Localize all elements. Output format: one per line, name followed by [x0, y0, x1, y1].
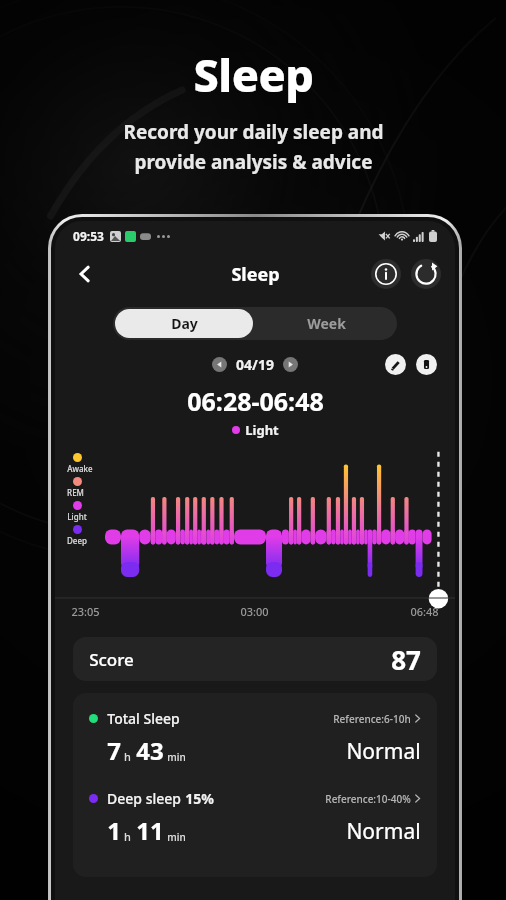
staticText: 11	[136, 814, 164, 847]
staticText: Normal	[346, 817, 421, 846]
staticText: 04/19	[236, 355, 274, 374]
staticText: Awake	[67, 463, 93, 474]
staticText: 06:28-06:48	[187, 384, 324, 418]
staticText: Total Sleep	[107, 709, 180, 728]
staticText: Record your daily sleep and	[123, 119, 384, 145]
button[interactable]: Next day	[283, 357, 298, 372]
button[interactable]: Deep sleep	[73, 789, 437, 847]
button[interactable]: Information	[371, 259, 401, 289]
staticText: Deep	[67, 535, 87, 546]
staticText: Reference:6-10h	[333, 712, 411, 726]
staticText: min	[167, 750, 186, 764]
button[interactable]: Edit	[385, 354, 406, 375]
button[interactable]: Day	[115, 309, 253, 338]
staticText: Light	[67, 511, 87, 522]
staticText: 06:48	[410, 604, 439, 619]
button[interactable]: Device	[416, 354, 437, 375]
button[interactable]: Back	[67, 256, 103, 292]
staticText: 7	[107, 734, 121, 767]
staticText: Sleep	[193, 44, 314, 105]
button[interactable]: Share	[411, 259, 441, 289]
staticText: Deep sleep	[107, 789, 181, 808]
staticText: h	[124, 749, 131, 764]
staticText: Sleep	[231, 262, 280, 287]
staticText: Normal	[346, 737, 421, 766]
staticText: provide analysis & advice	[134, 149, 373, 175]
staticText: Day	[171, 314, 198, 333]
staticText: Reference:10-40%	[325, 792, 411, 806]
staticText: 1	[107, 814, 121, 847]
staticText: Week	[307, 314, 346, 333]
staticText: Light	[245, 421, 279, 439]
staticText: 43	[136, 734, 164, 767]
staticText: Score	[89, 648, 134, 671]
staticText: REM	[67, 487, 84, 498]
staticText: 09:53	[73, 228, 104, 244]
button[interactable]: Previous day	[212, 357, 227, 372]
staticText: 03:00	[240, 604, 269, 619]
button[interactable]: Score	[73, 637, 437, 681]
button[interactable]: Week	[255, 307, 397, 340]
button[interactable]: Total Sleep	[73, 709, 437, 767]
staticText: 87	[391, 642, 421, 677]
staticText: h	[124, 829, 131, 844]
staticText: 15%	[185, 789, 214, 808]
staticText: min	[167, 830, 186, 844]
staticText: 23:05	[71, 604, 100, 619]
